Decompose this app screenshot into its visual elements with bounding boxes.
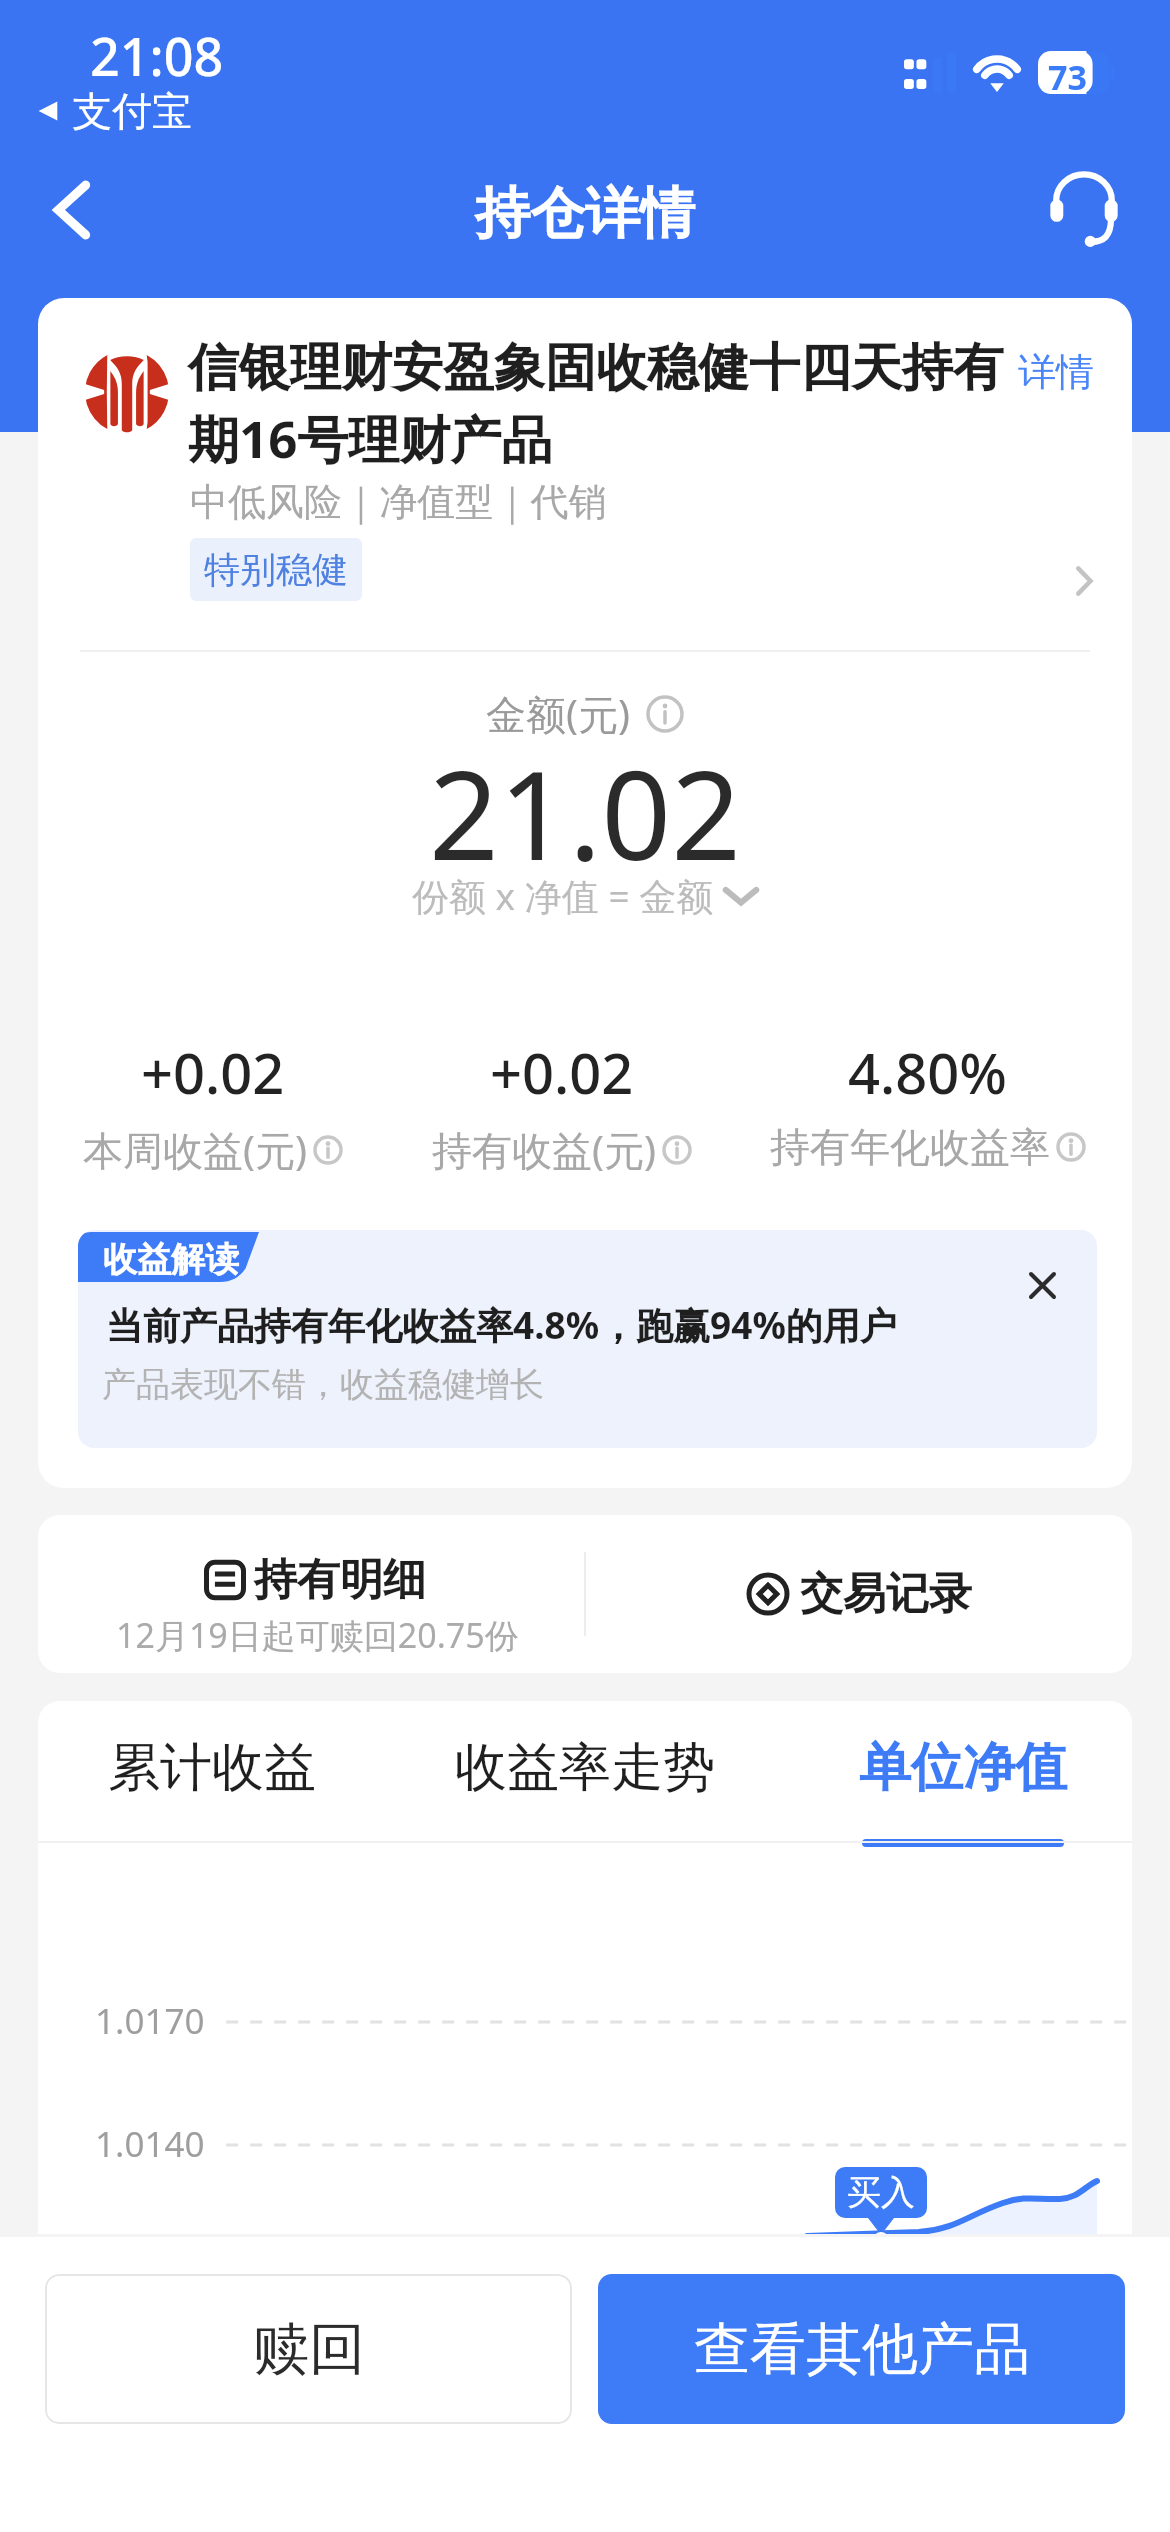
staticText: 查看其他产品 [694, 2314, 1030, 2385]
staticText: 特别稳健 [204, 547, 348, 592]
staticText: +0.02 [141, 1034, 285, 1110]
staticText: 4.80% [848, 1034, 1008, 1110]
staticText: 单位净值 [859, 1735, 1067, 1801]
staticText: 21.02 [38, 730, 1132, 896]
staticText: 收益率走势 [455, 1735, 715, 1801]
staticText: 累计收益 [108, 1735, 316, 1801]
staticText: 赎回 [253, 2314, 365, 2385]
button[interactable]: Back [22, 168, 122, 268]
staticText: 12月19日起可赎回20.75份 [116, 1612, 519, 1658]
staticText: 1.0140 [95, 2120, 205, 2168]
staticText: 份额 x 净值 = 金额 [412, 870, 714, 921]
staticText: 持有明细 [254, 1553, 426, 1607]
staticText: 收益解读 [103, 1238, 239, 1281]
staticText: 持有年化收益率 [770, 1122, 1050, 1172]
button[interactable]: 交易记录 [586, 1515, 1132, 1673]
staticText: 持仓详情 [475, 179, 695, 248]
staticText: 当前产品持有年化收益率4.8%，跑赢94%的用户 [106, 1299, 897, 1350]
staticText: 中低风险｜净值型｜代销 [190, 478, 607, 526]
button[interactable]: 持有明细 [38, 1515, 584, 1673]
button[interactable]: 查看其他产品 [598, 2274, 1125, 2424]
button[interactable]: 赎回 [45, 2274, 572, 2424]
button[interactable]: 特别稳健 [204, 547, 348, 592]
staticText: 本周收益(元) [83, 1122, 307, 1177]
button[interactable]: 单位净值 [798, 1735, 1128, 1847]
staticText: 73 [1048, 54, 1087, 100]
button[interactable]: 累计收益 [47, 1735, 377, 1847]
staticText: 买入 [847, 2171, 915, 2214]
staticText: 支付宝 [72, 86, 192, 136]
staticText: 产品表现不错，收益稳健增长 [102, 1363, 544, 1406]
button[interactable]: Buy point [835, 2167, 927, 2234]
staticText: +0.02 [490, 1034, 634, 1110]
button[interactable]: Customer service [1034, 168, 1134, 268]
staticText: 21:08 [90, 20, 224, 91]
staticText: 持有收益(元) [432, 1122, 656, 1177]
button[interactable]: 收益率走势 [420, 1735, 750, 1847]
staticText: 交易记录 [800, 1567, 972, 1621]
staticText: 金额(元) [486, 686, 630, 741]
button[interactable]: Close [1019, 1262, 1065, 1308]
staticText: 1.0170 [95, 1997, 205, 2045]
button[interactable]: 详情 [1018, 348, 1094, 396]
staticText: 信银理财安盈象固收稳健十四天持有期16号理财产品 [188, 336, 1018, 473]
